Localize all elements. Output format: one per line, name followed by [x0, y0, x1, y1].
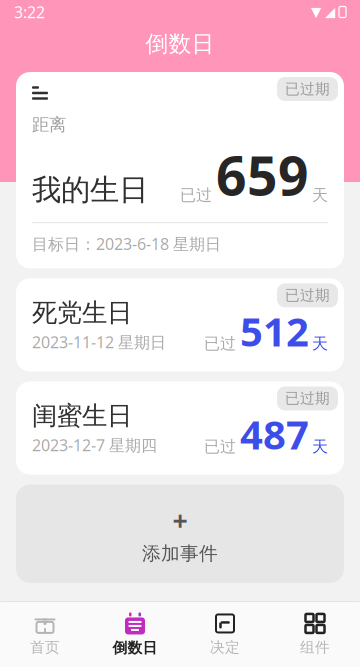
button[interactable]: 首页: [0, 606, 90, 662]
button[interactable]: 距离: [16, 72, 344, 268]
staticText: 已过期: [285, 286, 330, 304]
staticText: 512: [240, 304, 309, 357]
staticText: +: [172, 503, 187, 538]
staticText: 距离: [32, 114, 66, 135]
staticText: 659: [216, 139, 309, 210]
button[interactable]: 决定: [180, 606, 270, 662]
staticText: 添加事件: [142, 542, 218, 565]
staticText: 已过期: [285, 389, 330, 407]
staticText: ◢: [325, 4, 335, 19]
staticText: 天: [312, 185, 328, 205]
staticText: 已过期: [285, 80, 330, 98]
staticText: 已过: [180, 185, 212, 205]
button[interactable]: 死党生日: [16, 278, 344, 371]
staticText: 目标日：2023-6-18 星期日: [32, 233, 221, 254]
staticText: 组件: [300, 638, 330, 656]
staticText: 天: [312, 334, 328, 353]
staticText: 倒数日: [112, 639, 157, 657]
staticText: 决定: [210, 638, 240, 656]
staticText: 487: [240, 407, 309, 461]
button[interactable]: 倒数日: [90, 606, 180, 663]
staticText: 2023-11-12 星期日: [32, 331, 166, 353]
button[interactable]: 闺蜜生日: [16, 381, 344, 475]
staticText: 首页: [30, 638, 60, 656]
staticText: 天: [312, 437, 328, 457]
staticText: 闺蜜生日: [32, 400, 132, 431]
staticText: 死党生日: [32, 297, 132, 328]
staticText: 已过: [204, 437, 236, 457]
staticText: 2023-12-7 星期四: [32, 434, 157, 456]
button[interactable]: 组件: [270, 606, 360, 662]
staticText: 3:22: [14, 1, 45, 23]
staticText: 我的生日: [32, 172, 148, 208]
staticText: 倒数日: [145, 30, 214, 58]
staticText: ▼: [311, 4, 321, 19]
staticText: 已过: [204, 334, 236, 353]
button[interactable]: +: [16, 485, 344, 583]
